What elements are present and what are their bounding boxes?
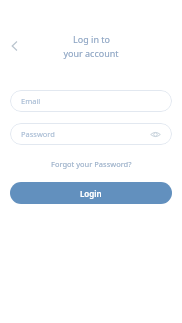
button[interactable]: Login: [10, 182, 172, 204]
button[interactable]: Back: [2, 33, 28, 59]
staticText: Log in to: [73, 33, 110, 45]
staticText: Email: [21, 96, 161, 106]
staticText: your account: [63, 47, 119, 59]
button[interactable]: Email: [10, 90, 172, 112]
staticText: Password: [21, 129, 149, 139]
staticText: Login: [80, 188, 102, 199]
button[interactable]: Show password: [149, 128, 161, 140]
button[interactable]: Password: [10, 123, 172, 145]
staticText: Forgot your Password?: [51, 159, 132, 169]
button[interactable]: Forgot your Password?: [45, 157, 138, 171]
